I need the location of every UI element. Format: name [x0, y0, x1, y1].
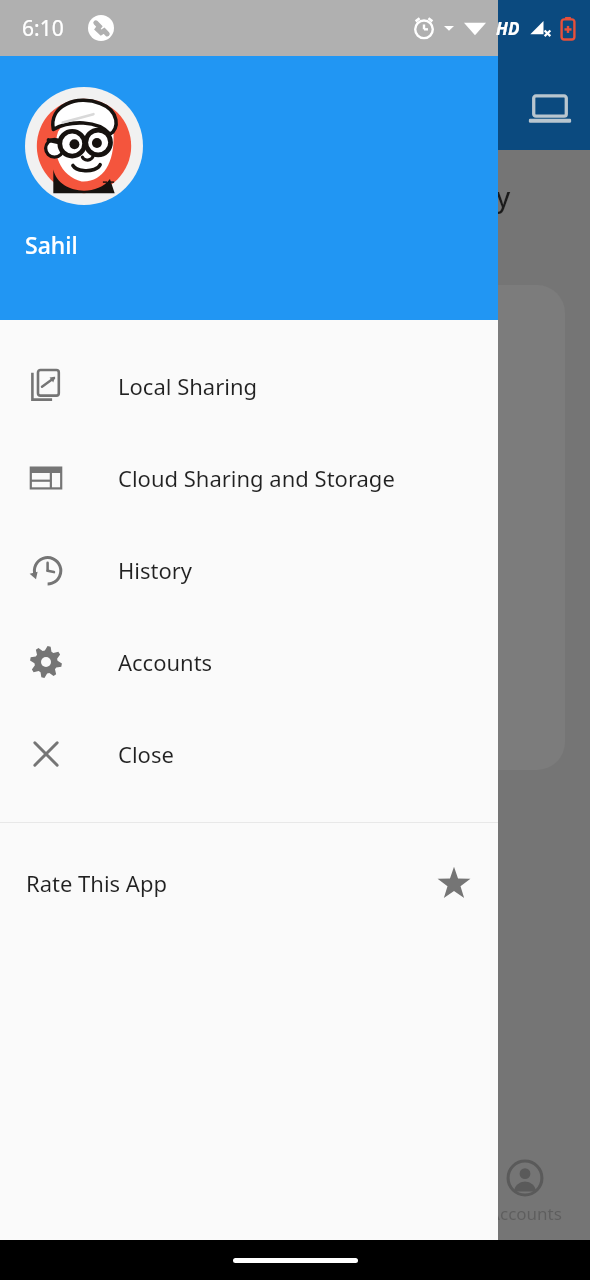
staticText: 6:10	[22, 14, 64, 43]
staticText: Rate This App	[26, 868, 167, 898]
button[interactable]: Cloud Sharing and Storage	[0, 432, 498, 524]
staticText: Close	[118, 739, 174, 769]
staticText: Local Sharing	[118, 371, 258, 401]
button[interactable]: Rate This App	[0, 823, 498, 943]
button[interactable]: Accounts	[470, 1160, 580, 1225]
staticText: Accounts	[489, 1202, 562, 1225]
button[interactable]: History	[0, 524, 498, 616]
other: Desktop	[528, 88, 572, 132]
staticText: y	[496, 178, 511, 215]
staticText: Sahil	[25, 229, 78, 260]
button[interactable]: Local Sharing	[0, 340, 498, 432]
staticText: Cloud Sharing and Storage	[118, 463, 395, 493]
staticText: Accounts	[118, 647, 213, 677]
staticText: HD	[496, 17, 520, 40]
button[interactable]: Close	[0, 708, 498, 800]
button[interactable]: Accounts	[0, 616, 498, 708]
staticText: History	[118, 555, 193, 585]
